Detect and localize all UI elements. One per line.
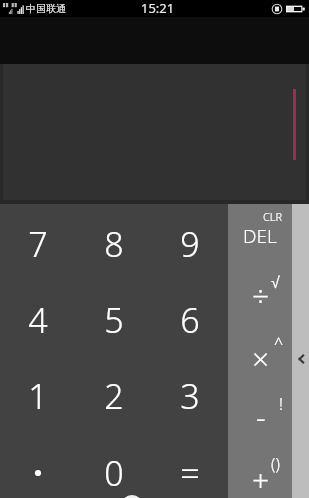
button[interactable]: = [152,435,228,498]
button[interactable] [3,64,306,200]
staticText: ! [279,393,283,415]
button[interactable]: ^ [228,327,292,388]
button[interactable]: 9 [152,206,228,282]
button[interactable]: √ [228,265,292,326]
staticText: ÷ [252,275,270,316]
button[interactable]: 1 [0,358,76,434]
staticText: 2 [104,373,124,419]
staticText: 7 [28,221,48,267]
staticText: + [252,459,270,498]
staticText: × [252,338,270,379]
button[interactable]: () [228,449,292,498]
staticText: 9 [180,221,200,267]
staticText: - [256,396,266,437]
staticText: = [180,450,200,496]
staticText: √ [271,274,280,292]
staticText: 0 [104,450,124,496]
staticText: 5 [104,297,124,343]
staticText: CLR [263,209,283,224]
staticText: 15:21 [141,0,175,16]
staticText: 8 [104,221,124,267]
staticText: 3 [180,373,200,419]
staticText: 6 [180,297,200,343]
button[interactable]: CLR [228,204,292,265]
button[interactable]: 0 [76,435,152,498]
button[interactable]: 3 [152,358,228,434]
staticText: 1 [28,373,48,419]
button[interactable]: Decimal point [0,435,76,498]
staticText: 4 [28,297,48,343]
button[interactable]: Collapse panel [292,333,309,383]
button[interactable]: ! [228,388,292,449]
button[interactable]: 6 [152,282,228,358]
button[interactable]: 2 [76,358,152,434]
staticText: ^ [274,333,284,355]
button[interactable]: 4 [0,282,76,358]
button[interactable]: 7 [0,206,76,282]
button[interactable]: 8 [76,206,152,282]
staticText: 中国联通 [26,2,66,15]
staticText: () [271,453,280,475]
button[interactable]: 5 [76,282,152,358]
staticText: DEL [243,223,277,249]
